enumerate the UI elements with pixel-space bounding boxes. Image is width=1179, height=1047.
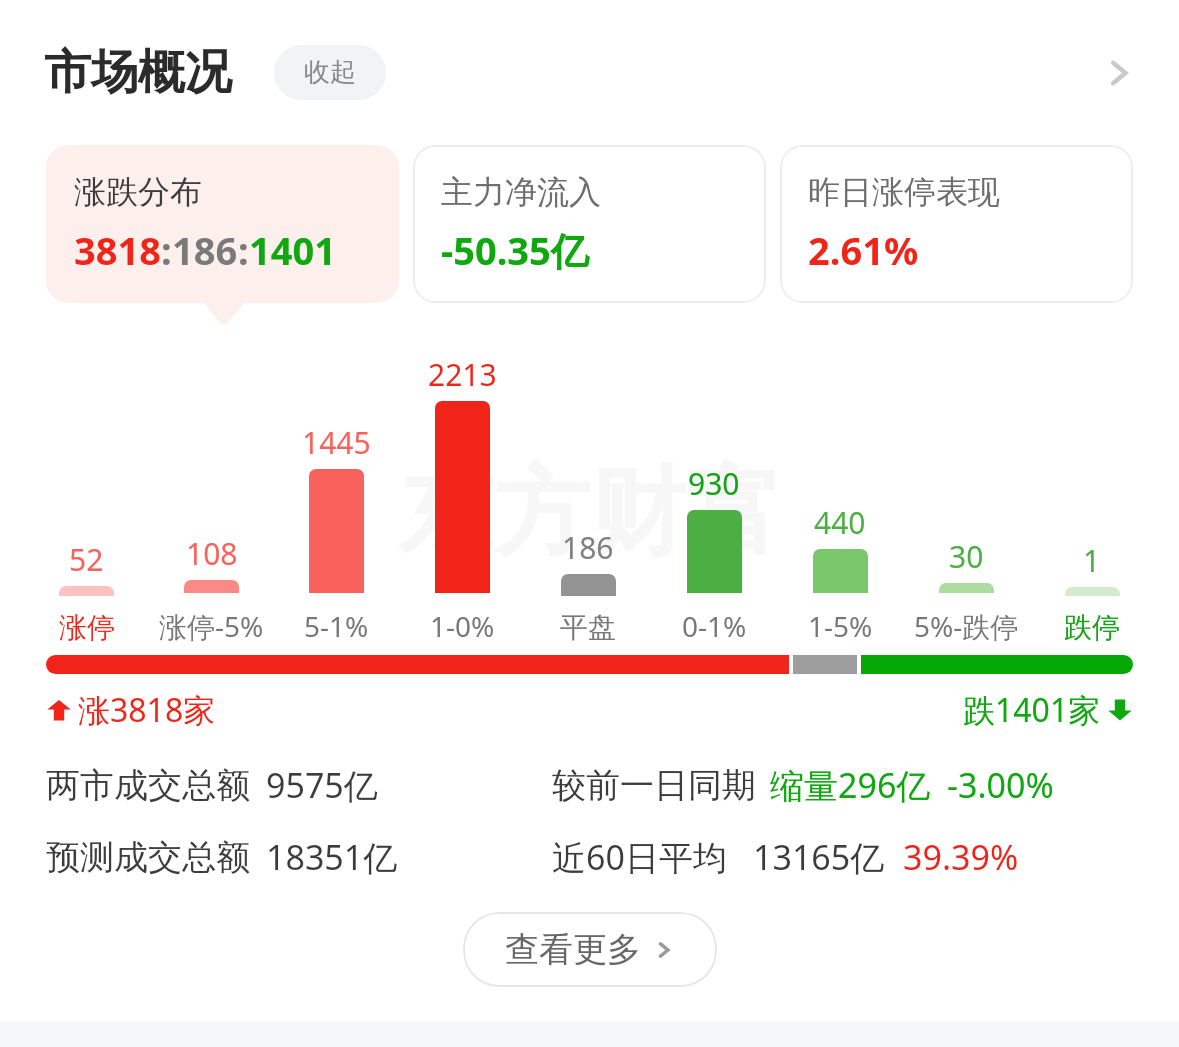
staticText: 186 [172, 224, 238, 276]
staticText: 缩量296亿 [770, 762, 931, 808]
staticText: : [238, 224, 249, 276]
staticText: 预测成交总额 [46, 836, 250, 879]
staticText: 涨停-5% [159, 607, 264, 645]
button[interactable]: 涨跌分布 [46, 145, 399, 303]
staticText: 查看更多 [505, 928, 641, 971]
staticText: 18351亿 [266, 834, 398, 880]
staticText: 2.61% [808, 224, 919, 276]
staticText: 1445 [302, 422, 371, 463]
staticText: 39.39% [903, 834, 1019, 880]
staticText: 1 [1083, 540, 1101, 581]
staticText: 平盘 [560, 610, 616, 645]
staticText: 186 [562, 527, 614, 568]
button[interactable]: 主力净流入 [413, 145, 766, 303]
staticText: 108 [186, 533, 238, 574]
staticText: 跌停 [1064, 610, 1120, 645]
staticText: 5-1% [304, 607, 369, 645]
staticText: 东方财富 [398, 453, 782, 574]
staticText: -3.00% [947, 762, 1054, 808]
staticText: 30 [949, 536, 984, 577]
staticText: 1401 [249, 224, 336, 276]
staticText: 主力净流入 [441, 172, 601, 212]
staticText: : [161, 224, 172, 276]
staticText: 3818 [74, 224, 161, 276]
staticText: 两市成交总额 [46, 764, 250, 807]
staticText: 0-1% [682, 607, 747, 645]
staticText: 涨跌分布 [74, 172, 202, 212]
staticText: 较前一日同期 [552, 764, 756, 807]
staticText: 9575亿 [266, 762, 378, 808]
staticText: 昨日涨停表现 [808, 172, 1000, 212]
staticText: -50.35亿 [441, 224, 589, 276]
staticText: 近60日平均 [552, 834, 727, 880]
staticText: 5%-跌停 [914, 607, 1019, 645]
staticText: 440 [814, 502, 866, 543]
staticText: 1-5% [808, 607, 873, 645]
staticText: 涨3818家 [78, 688, 216, 732]
button[interactable]: 昨日涨停表现 [780, 145, 1133, 303]
button[interactable]: 查看更多 [463, 912, 717, 987]
staticText: 1-0% [430, 607, 495, 645]
staticText: 市场概况 [44, 43, 232, 102]
button[interactable]: More [1089, 43, 1149, 103]
staticText: 52 [69, 539, 104, 580]
staticText: 收起 [304, 56, 356, 89]
staticText: 跌1401家 [963, 688, 1101, 732]
staticText: 涨停 [59, 610, 115, 645]
staticText: 2213 [428, 354, 497, 395]
button[interactable]: 收起 [274, 45, 386, 100]
staticText: 930 [688, 463, 740, 504]
staticText: 13165亿 [753, 834, 885, 880]
